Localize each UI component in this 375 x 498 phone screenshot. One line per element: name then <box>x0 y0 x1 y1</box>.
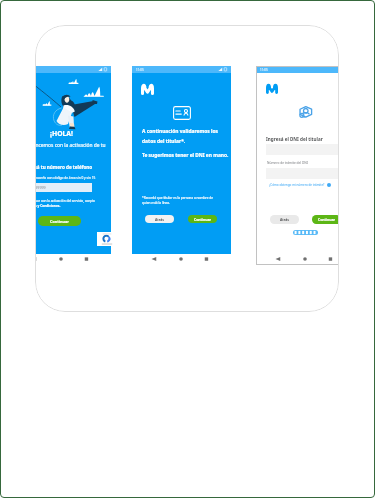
staticText: Número de trámite del DNI <box>267 161 308 165</box>
staticText: Al continuar con la activación del servi… <box>35 199 96 203</box>
button[interactable]: Continuar <box>188 215 217 223</box>
staticText: Continuar <box>50 219 69 224</box>
staticText: *Recordá que titular es la persona a nom… <box>142 196 214 205</box>
staticText: Ingresá el DNI del titular <box>266 136 323 142</box>
staticText: 11:05 <box>136 68 144 72</box>
other: reCAPTCHA <box>97 232 117 246</box>
staticText: ¡HOLA! <box>35 129 111 138</box>
staticText: 9999999999 <box>35 185 46 190</box>
staticText: 11:05 <box>260 68 268 72</box>
staticText: Comencemos con la activación de tu línea <box>35 142 106 155</box>
staticText: A continuación validaremos los datos del… <box>142 128 222 144</box>
staticText: Ingresá tu número de teléfono <box>35 164 93 170</box>
button[interactable]: Atrás <box>270 215 299 224</box>
staticText: Atrás <box>155 217 164 222</box>
button[interactable]: Continuar <box>38 216 81 226</box>
staticText: Términos y Condiciones. <box>35 204 61 208</box>
staticText: Te sugerimos tener el DNI en mano. <box>142 152 234 159</box>
staticText: Continuar <box>318 217 335 222</box>
button[interactable]: Atrás <box>145 215 174 223</box>
button[interactable]: Continuar <box>312 215 339 224</box>
staticText: Continuar <box>194 217 211 222</box>
button[interactable]: ¿Cómo obtengo mi número de trámite? <box>269 183 331 187</box>
staticText: Atrás <box>280 217 289 222</box>
staticText: Recordá hacerlo con código de área sin 0… <box>35 176 96 180</box>
staticText: ¿Cómo obtengo mi número de trámite? <box>269 183 325 187</box>
